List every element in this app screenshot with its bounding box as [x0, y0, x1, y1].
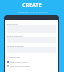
staticText: a beautiful form in minutes	[17, 10, 48, 13]
button[interactable]: Send me a copy	[7, 60, 56, 63]
staticText: Send me a copy	[10, 60, 28, 63]
staticText: Email address	[7, 34, 23, 37]
button[interactable]: Email address	[7, 34, 56, 43]
button[interactable]: Subscribe to news	[7, 64, 56, 67]
button[interactable]: Phone number	[7, 44, 56, 53]
button[interactable]: Full name	[7, 22, 56, 33]
staticText: Preferences	[7, 55, 21, 58]
staticText: Subscribe to news	[10, 64, 31, 67]
staticText: CREATE	[22, 2, 42, 9]
staticText: Full name	[7, 22, 18, 25]
staticText: Phone number	[7, 44, 24, 47]
